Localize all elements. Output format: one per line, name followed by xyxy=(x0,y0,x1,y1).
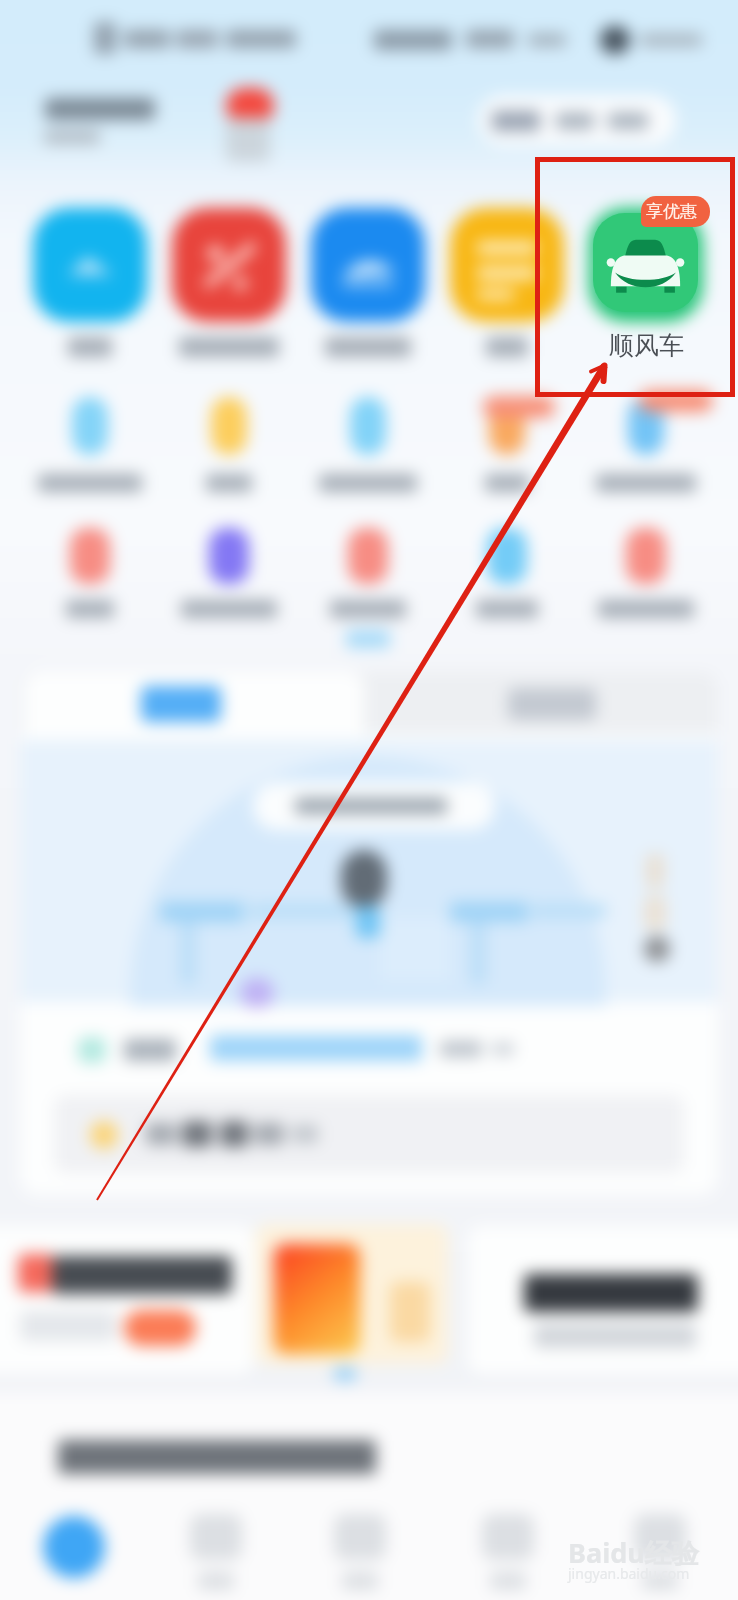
button[interactable] xyxy=(209,528,249,584)
button[interactable] xyxy=(628,397,664,455)
button[interactable] xyxy=(0,1226,254,1374)
button[interactable] xyxy=(350,397,386,455)
button[interactable]: Discover xyxy=(298,1500,422,1600)
button[interactable] xyxy=(626,528,666,584)
other: Highlight annotation xyxy=(0,0,738,1600)
button[interactable] xyxy=(593,213,698,312)
button[interactable]: Home xyxy=(12,1500,136,1600)
button[interactable] xyxy=(54,1095,684,1173)
button[interactable] xyxy=(450,208,564,322)
staticText: 享优惠 xyxy=(646,201,697,222)
button[interactable] xyxy=(478,95,676,145)
button[interactable] xyxy=(24,672,364,734)
button[interactable]: Messages xyxy=(446,1500,570,1600)
button[interactable]: Me xyxy=(598,1500,722,1600)
staticText: Baidu经验 xyxy=(568,1534,699,1571)
staticText: jingyan.baidu.com xyxy=(568,1564,690,1583)
button[interactable] xyxy=(72,397,108,455)
button[interactable] xyxy=(348,528,388,584)
button[interactable] xyxy=(70,528,110,584)
button[interactable] xyxy=(489,397,525,455)
button[interactable] xyxy=(311,208,425,322)
button[interactable] xyxy=(211,397,247,455)
button[interactable] xyxy=(589,208,703,322)
button[interactable]: Orders xyxy=(154,1500,278,1600)
staticText: 顺风车 xyxy=(609,330,684,361)
button[interactable] xyxy=(33,208,147,322)
button[interactable] xyxy=(487,528,527,584)
button[interactable] xyxy=(468,1226,738,1374)
button[interactable] xyxy=(253,782,495,830)
button[interactable] xyxy=(256,1224,448,1364)
button[interactable] xyxy=(172,208,286,322)
